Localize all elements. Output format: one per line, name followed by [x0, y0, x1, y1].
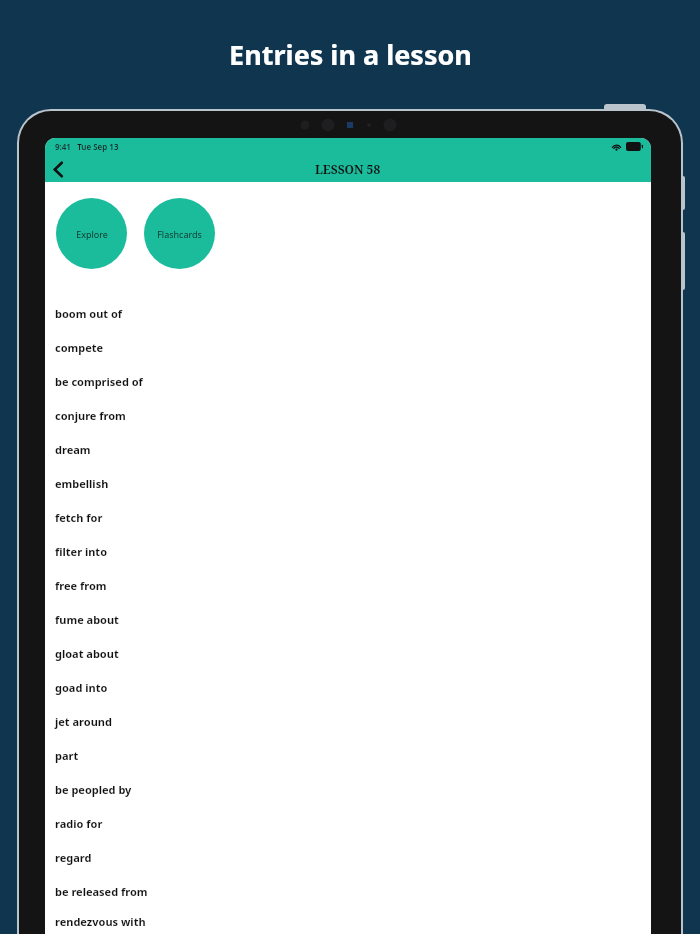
staticText: part — [55, 748, 79, 763]
button[interactable]: be released from — [45, 874, 651, 908]
staticText: conjure from — [55, 408, 126, 423]
button[interactable]: be peopled by — [45, 772, 651, 806]
staticText: radio for — [55, 816, 103, 831]
staticText: LESSON 58 — [315, 161, 381, 177]
button[interactable]: free from — [45, 568, 651, 602]
staticText: embellish — [55, 476, 109, 491]
button[interactable]: be comprised of — [45, 364, 651, 398]
staticText: jet around — [55, 714, 112, 729]
staticText: free from — [55, 578, 107, 593]
staticText: dream — [55, 442, 91, 457]
staticText: Explore — [76, 228, 108, 240]
staticText: gloat about — [55, 646, 119, 661]
staticText: fetch for — [55, 510, 103, 525]
button[interactable]: conjure from — [45, 398, 651, 432]
staticText: Entries in a lesson — [229, 36, 472, 73]
staticText: 9:41 Tue Sep 13 — [55, 141, 119, 152]
button[interactable]: gloat about — [45, 636, 651, 670]
button[interactable]: rendezvous with — [45, 908, 651, 934]
staticText: compete — [55, 340, 104, 355]
staticText: goad into — [55, 680, 108, 695]
button[interactable]: part — [45, 738, 651, 772]
button[interactable]: Back — [45, 156, 71, 182]
button[interactable]: Explore — [56, 198, 127, 269]
button[interactable]: radio for — [45, 806, 651, 840]
button[interactable]: dream — [45, 432, 651, 466]
button[interactable]: fetch for — [45, 500, 651, 534]
button[interactable]: filter into — [45, 534, 651, 568]
staticText: be released from — [55, 884, 148, 899]
staticText: rendezvous with — [55, 914, 146, 929]
button[interactable]: fume about — [45, 602, 651, 636]
button[interactable]: embellish — [45, 466, 651, 500]
staticText: filter into — [55, 544, 108, 559]
button[interactable]: regard — [45, 840, 651, 874]
staticText: be peopled by — [55, 782, 132, 797]
button[interactable]: Flashcards — [144, 198, 215, 269]
staticText: fume about — [55, 612, 119, 627]
staticText: boom out of — [55, 306, 123, 321]
button[interactable]: jet around — [45, 704, 651, 738]
button[interactable]: compete — [45, 330, 651, 364]
staticText: regard — [55, 850, 92, 865]
staticText: Flashcards — [157, 228, 202, 240]
button[interactable]: boom out of — [45, 296, 651, 330]
staticText: be comprised of — [55, 374, 143, 389]
button[interactable]: goad into — [45, 670, 651, 704]
